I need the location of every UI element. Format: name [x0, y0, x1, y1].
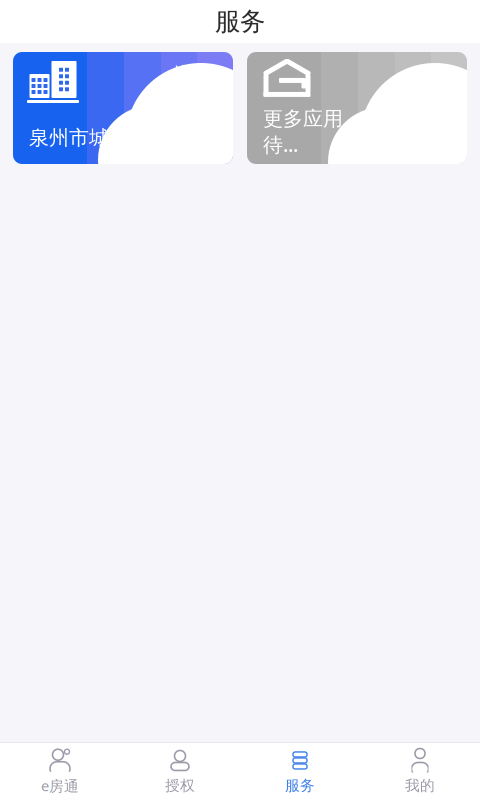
- button[interactable]: 详情: [13, 52, 233, 164]
- button[interactable]: 授权: [120, 743, 240, 800]
- staticText: 更多应用，敬请期待...: [263, 106, 423, 157]
- staticText: e房通: [41, 776, 79, 795]
- staticText: 我的: [405, 776, 435, 794]
- staticText: 泉州市城市服务: [29, 125, 169, 150]
- staticText: »: [211, 62, 220, 85]
- staticText: 服务: [215, 6, 265, 37]
- staticText: 详情: [175, 63, 209, 84]
- button[interactable]: e房通: [0, 743, 120, 800]
- button[interactable]: 服务: [240, 743, 360, 800]
- staticText: 授权: [165, 776, 195, 794]
- button[interactable]: 我的: [360, 743, 480, 800]
- staticText: 服务: [285, 776, 315, 794]
- button[interactable]: 更多应用，敬请期待...: [247, 52, 467, 164]
